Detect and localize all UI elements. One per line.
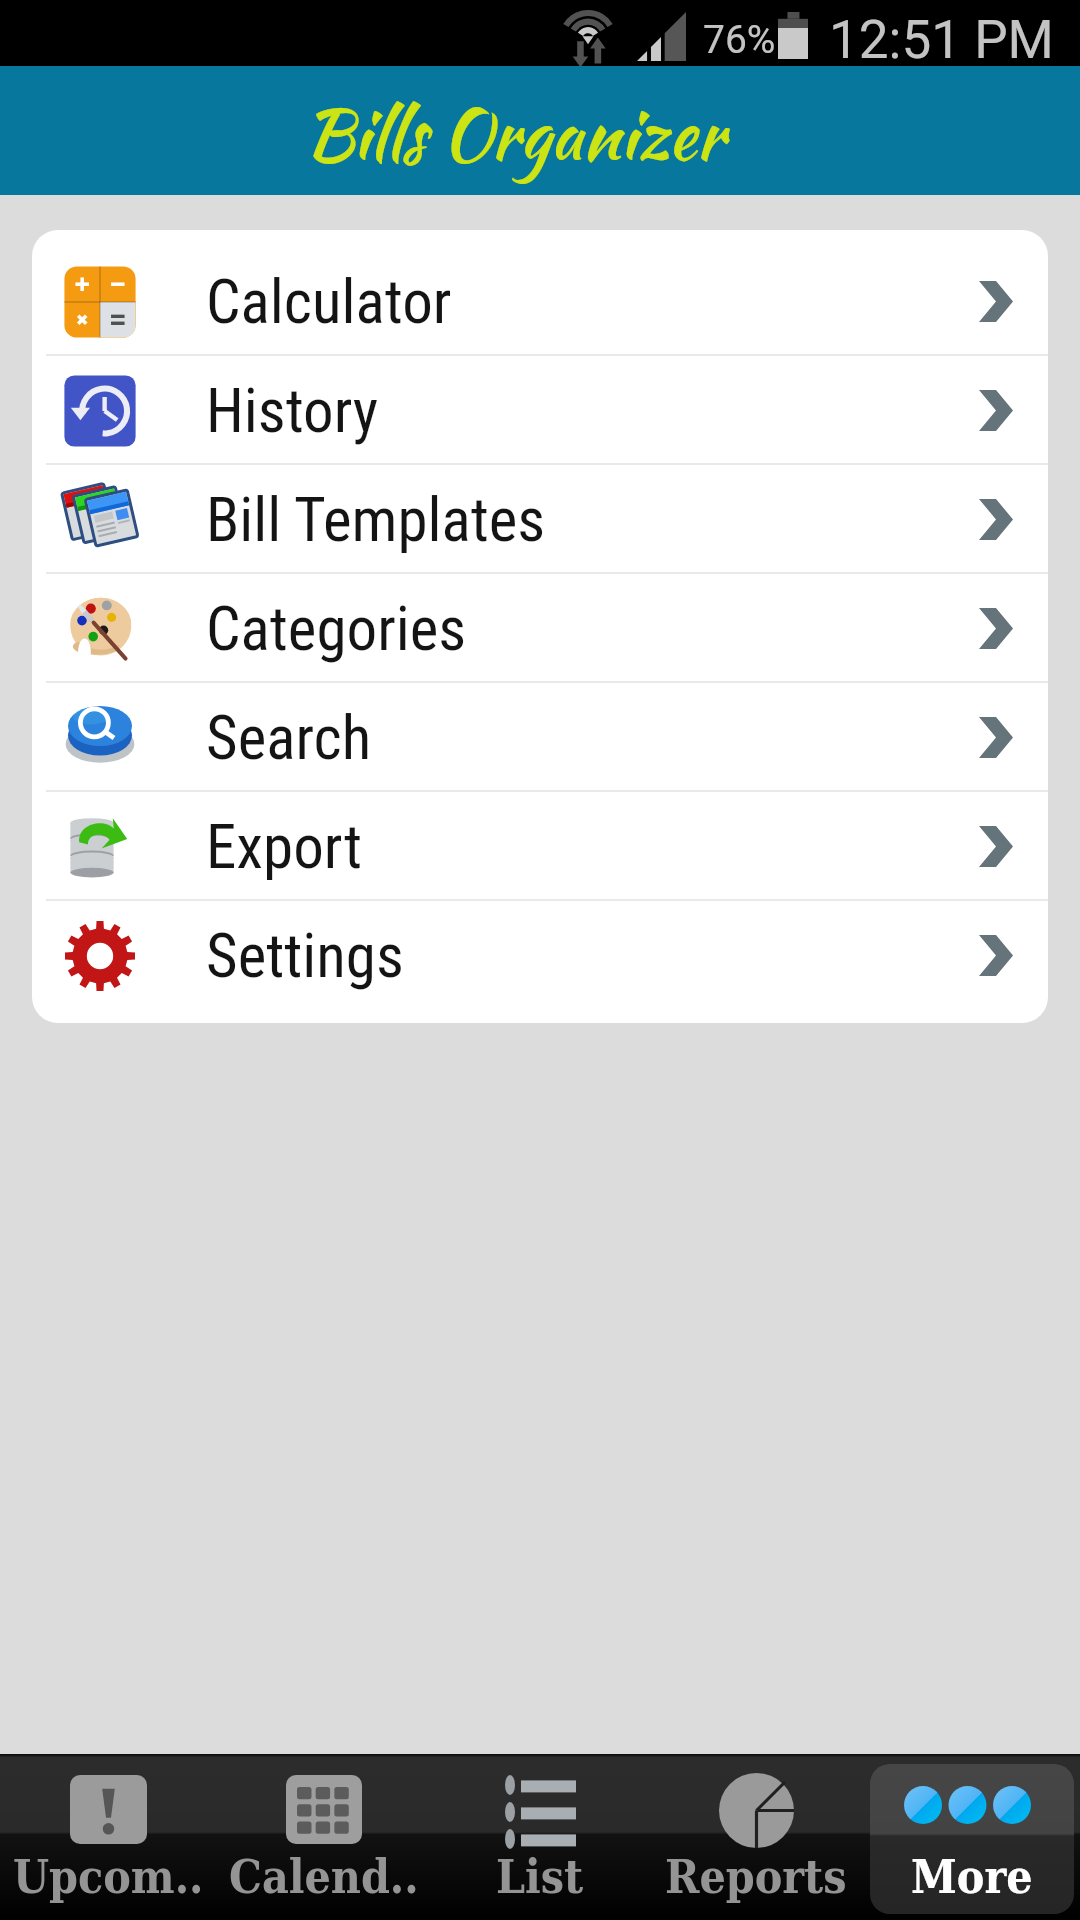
button[interactable]: Categories [32, 574, 1048, 683]
staticText: Search [206, 702, 372, 773]
staticText: Upcom.. [13, 1850, 204, 1904]
staticText: Bill Templates [206, 484, 546, 555]
staticText: Calend.. [229, 1850, 419, 1904]
staticText: More [911, 1850, 1033, 1904]
button[interactable]: Calculator [32, 247, 1048, 356]
staticText: History [206, 375, 379, 446]
staticText: 76% [703, 17, 776, 63]
staticText: 12:51 PM [829, 9, 1054, 71]
staticText: List [496, 1850, 584, 1904]
staticText: Settings [206, 920, 404, 991]
button[interactable]: List [438, 1764, 642, 1914]
staticText: Bills Organizer [0, 84, 1054, 184]
button[interactable]: Reports [654, 1764, 858, 1914]
button[interactable]: Export [32, 792, 1048, 901]
staticText: Calculator [206, 266, 452, 337]
button[interactable]: More [870, 1764, 1074, 1914]
button[interactable]: Settings [32, 901, 1048, 1010]
button[interactable]: History [32, 356, 1048, 465]
button[interactable]: Bill Templates [32, 465, 1048, 574]
staticText: Reports [665, 1850, 847, 1904]
button[interactable]: Calendar [222, 1764, 426, 1914]
button[interactable]: Search [32, 683, 1048, 792]
staticText: Export [206, 811, 362, 882]
staticText: Categories [206, 593, 467, 664]
button[interactable]: Upcoming [6, 1764, 210, 1914]
